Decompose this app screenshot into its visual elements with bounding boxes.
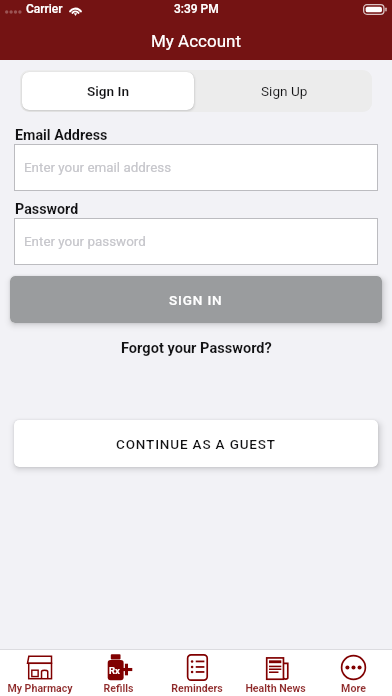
button[interactable]: Enter your password (14, 218, 378, 265)
staticText: Refills (103, 682, 134, 694)
button[interactable]: CONTINUE AS A GUEST (14, 420, 378, 467)
staticText: My Pharmacy (7, 682, 73, 694)
staticText: SIGN IN (169, 292, 223, 308)
staticText: Password (15, 201, 79, 218)
staticText: Carrier (26, 2, 63, 16)
staticText: Rx (109, 665, 120, 676)
button[interactable]: Sign In (22, 72, 194, 110)
button[interactable]: Forgot your Password? (111, 337, 282, 358)
staticText: Enter your password (24, 234, 146, 250)
button[interactable]: Refills (79, 650, 158, 696)
button[interactable]: Enter your email address (14, 144, 378, 191)
staticText: Enter your email address (24, 160, 172, 176)
staticText: Sign In (87, 83, 130, 99)
button[interactable]: SIGN IN (10, 276, 382, 323)
staticText: More (341, 682, 366, 694)
staticText: Forgot your Password? (121, 339, 272, 356)
staticText: Sign Up (261, 83, 308, 99)
staticText: 3:39 PM (174, 2, 219, 16)
staticText: Health News (245, 682, 306, 694)
button[interactable]: Health News (236, 650, 314, 696)
button[interactable]: More (314, 650, 392, 696)
staticText: Reminders (171, 682, 223, 694)
staticText: My Account (151, 31, 242, 51)
button[interactable]: Reminders (158, 650, 236, 696)
staticText: Email Address (15, 127, 108, 144)
button[interactable]: My Pharmacy (0, 650, 79, 696)
button[interactable]: Sign Up (196, 70, 372, 112)
staticText: CONTINUE AS A GUEST (116, 436, 276, 452)
